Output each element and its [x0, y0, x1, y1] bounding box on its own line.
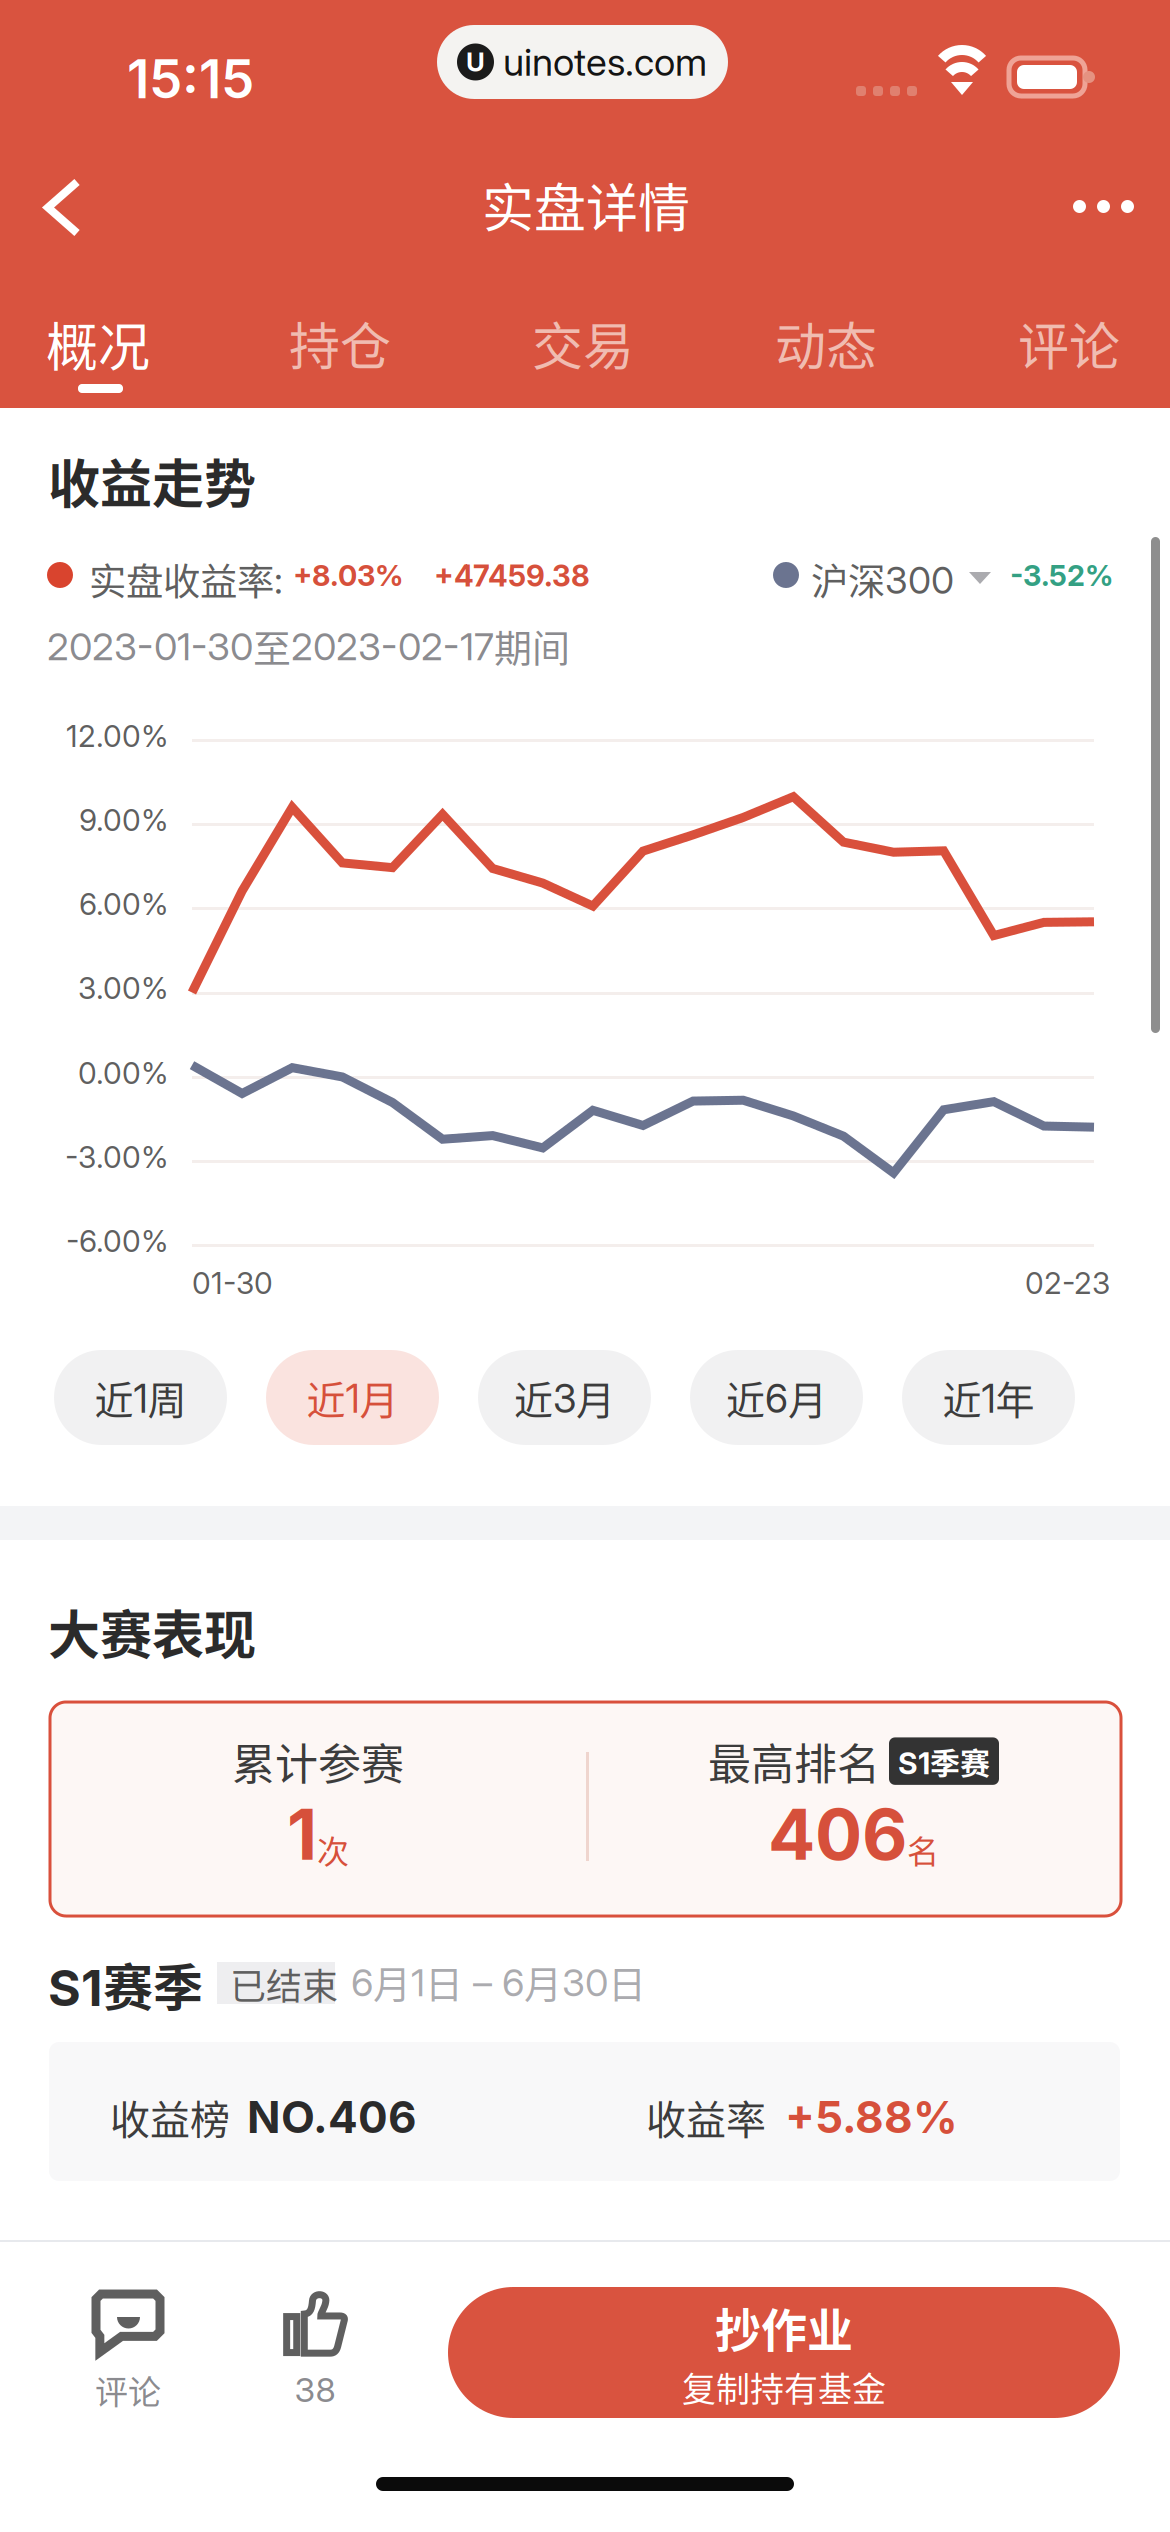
staticText: 02-23 — [1025, 1265, 1110, 1301]
button[interactable]: 近1年 — [902, 1350, 1075, 1445]
button[interactable]: 近3月 — [478, 1350, 651, 1445]
button[interactable]: 点赞 — [245, 2294, 385, 2410]
button[interactable]: 概况 — [48, 308, 198, 426]
staticText: S1赛季 — [48, 1948, 203, 2020]
staticText: 15:15 — [127, 47, 254, 111]
staticText: 近6月 — [726, 1369, 827, 1426]
staticText: 收益榜 — [110, 2088, 230, 2146]
button[interactable]: 评论 — [1020, 308, 1170, 426]
staticText: 6月1日 – 6月30日 — [351, 1954, 646, 2009]
staticText: 大赛表现 — [48, 1594, 256, 1669]
staticText: 收益走势 — [48, 443, 256, 518]
staticText: 实盘收益率: — [89, 552, 283, 606]
staticText: 评论 — [1018, 306, 1120, 380]
staticText: 近1年 — [942, 1369, 1034, 1426]
button[interactable]: 返回 — [2, 148, 123, 267]
staticText: 实盘详情 — [482, 167, 690, 242]
staticText: 复制持有基金 — [682, 2362, 886, 2411]
staticText: 次 — [317, 1826, 349, 1873]
staticText: 9.00% — [79, 802, 168, 838]
staticText: 收益率 — [646, 2088, 766, 2146]
button[interactable]: 近6月 — [690, 1350, 863, 1445]
staticText: 38 — [294, 2369, 335, 2410]
staticText: 持仓 — [289, 306, 391, 380]
staticText: uinotes.com — [503, 39, 707, 85]
staticText: 近3月 — [514, 1369, 615, 1426]
staticText: 0.00% — [78, 1055, 168, 1091]
button[interactable]: 更多 — [1039, 160, 1168, 253]
button[interactable]: 近1周 — [54, 1350, 227, 1445]
staticText: 动态 — [775, 306, 877, 380]
staticText: NO.406 — [247, 2090, 417, 2143]
staticText: +8.03% — [293, 558, 403, 593]
staticText: -3.52% — [1010, 558, 1113, 593]
staticText: 12.00% — [66, 718, 168, 754]
staticText: 最高排名 — [708, 1730, 880, 1792]
button[interactable]: 抄作业 — [448, 2287, 1120, 2418]
staticText: -3.00% — [65, 1139, 168, 1175]
staticText: 评论 — [95, 2366, 161, 2414]
staticText: -6.00% — [66, 1223, 168, 1259]
staticText: 名 — [907, 1826, 939, 1873]
staticText: U — [466, 46, 485, 78]
staticText: 3.00% — [78, 970, 168, 1006]
staticText: +47459.38 — [434, 558, 590, 594]
staticText: 概况 — [46, 306, 150, 381]
staticText: 2023-01-30至2023-02-17期间 — [47, 618, 570, 673]
button[interactable]: 交易 — [534, 308, 684, 426]
staticText: 累计参赛 — [232, 1730, 404, 1792]
staticText: 406 — [768, 1792, 907, 1877]
staticText: S1季赛 — [898, 1739, 990, 1783]
staticText: 近1月 — [306, 1369, 398, 1426]
staticText: 沪深300 — [811, 552, 954, 606]
staticText: 近1周 — [94, 1369, 186, 1426]
staticText: 抄作业 — [715, 2294, 853, 2360]
staticText: 1 — [287, 1792, 317, 1877]
staticText: 01-30 — [192, 1265, 273, 1301]
button[interactable]: 持仓 — [291, 308, 441, 426]
button[interactable]: 近1月 — [266, 1350, 439, 1445]
button[interactable]: 动态 — [777, 308, 927, 426]
button[interactable]: 评论 — [58, 2294, 198, 2414]
staticText: 已结束 — [230, 1958, 338, 2010]
staticText: 6.00% — [79, 886, 168, 922]
staticText: 交易 — [532, 306, 634, 380]
staticText: +5.88% — [785, 2090, 958, 2143]
button[interactable]: 实盘详情 — [456, 145, 716, 264]
